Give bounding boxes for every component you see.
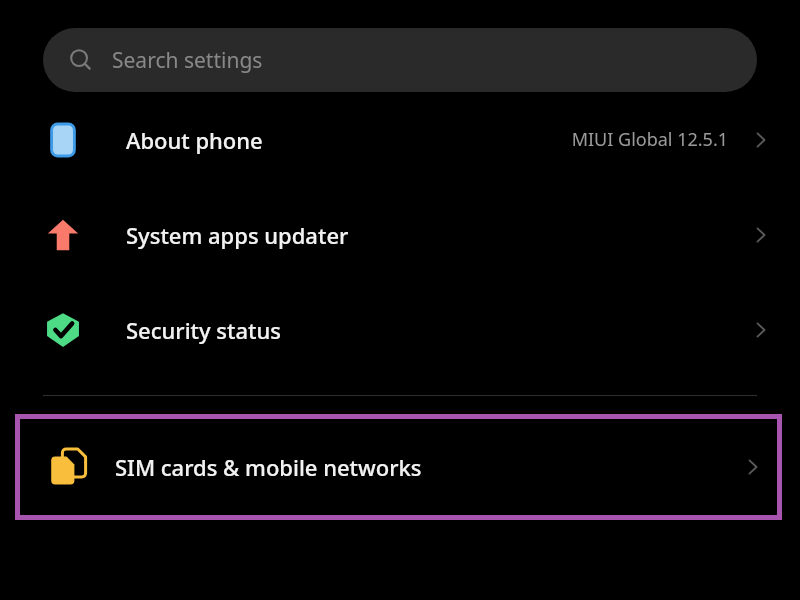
button[interactable]: SIM cards & mobile networks: [20, 414, 777, 520]
button[interactable]: System apps updater: [0, 187, 800, 282]
staticText: MIUI Global 12.5.1: [571, 127, 728, 152]
staticText: SIM cards & mobile networks: [115, 452, 422, 482]
staticText: Security status: [126, 315, 281, 345]
button[interactable]: Search settings: [43, 28, 757, 92]
button[interactable]: About phone: [0, 92, 800, 187]
button[interactable]: Security status: [0, 282, 800, 377]
staticText: Search settings: [112, 46, 263, 75]
staticText: System apps updater: [126, 220, 349, 250]
staticText: About phone: [126, 125, 263, 155]
